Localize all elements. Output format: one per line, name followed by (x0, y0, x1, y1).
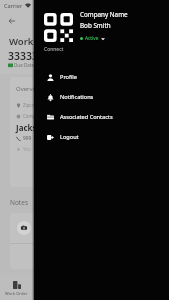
button[interactable]: Associated Contacts (34, 107, 169, 127)
staticText: Overview (16, 85, 43, 93)
staticText: Due Date 12 (14, 62, 42, 68)
staticText: Bob Smith (80, 21, 111, 30)
staticText: Zipcode, Ci (23, 102, 46, 108)
staticText: 999 (23, 135, 32, 142)
button[interactable]: Company Name (34, 0, 169, 300)
button[interactable]: Notifications (34, 87, 169, 107)
staticText: Notes (10, 198, 28, 207)
button[interactable]: Add photo (17, 221, 31, 235)
staticText: 333333333 (8, 49, 63, 63)
staticText: Associated Contacts (60, 113, 113, 121)
staticText: Profile (60, 73, 77, 81)
staticText: Carrier (4, 2, 23, 9)
button[interactable]: Back (6, 15, 18, 27)
staticText: Connect (44, 46, 64, 53)
staticText: Company Name (80, 10, 128, 19)
staticText: Work Order (9, 35, 63, 48)
button[interactable]: Logout (34, 127, 169, 147)
button[interactable]: Profile (34, 67, 169, 87)
button[interactable]: Active (80, 35, 105, 42)
staticText: You (23, 146, 31, 152)
staticText: Work Order (5, 291, 28, 297)
staticText: Jackson (16, 122, 47, 133)
button[interactable]: Work Order (0, 273, 33, 300)
staticText: Active (85, 35, 99, 42)
staticText: Logout (60, 133, 79, 141)
staticText: Notifications (60, 93, 94, 101)
staticText: Comp (23, 113, 36, 119)
